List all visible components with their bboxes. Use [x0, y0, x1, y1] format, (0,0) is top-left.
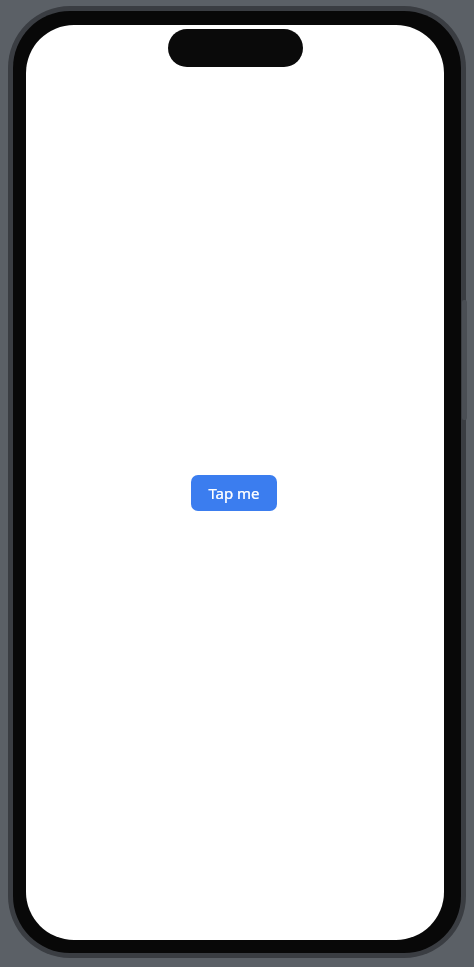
staticText: Tap me	[208, 483, 260, 503]
button[interactable]: Tap me	[191, 475, 277, 511]
